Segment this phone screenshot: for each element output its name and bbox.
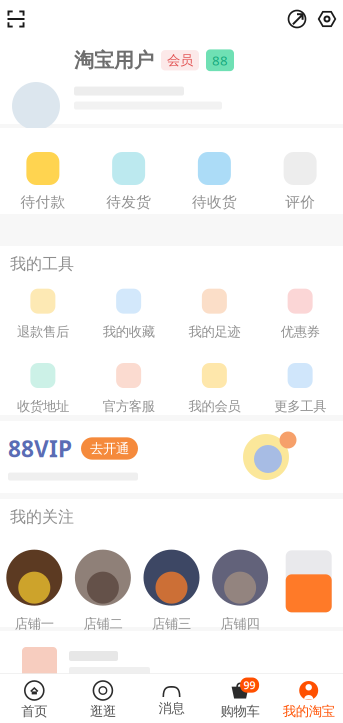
button[interactable]: 99 (206, 680, 274, 719)
button[interactable]: 逛逛 (69, 680, 137, 719)
button[interactable]: 店铺四 (206, 550, 274, 632)
staticText: 我的收藏 (103, 324, 155, 340)
staticText: 99 (244, 678, 256, 692)
staticText: 评价 (285, 193, 315, 211)
button[interactable]: 店铺二 (69, 550, 137, 632)
staticText: 消息 (158, 700, 184, 716)
button[interactable]: Share (282, 4, 312, 34)
staticText: 待发货 (106, 193, 151, 211)
staticText: 我的工具 (10, 254, 74, 274)
staticText: 逛逛 (90, 703, 116, 719)
staticText: 88VIP (8, 433, 72, 463)
staticText: 退款售后 (17, 324, 69, 340)
staticText: 店铺一 (15, 616, 54, 632)
button[interactable]: 更多工具 (257, 363, 343, 414)
button[interactable]: 官方客服 (86, 363, 172, 414)
button[interactable]: 淘宝用户 (0, 38, 343, 124)
staticText: 购物车 (221, 703, 260, 719)
staticText: 店铺四 (221, 616, 260, 632)
staticText: 首页 (21, 703, 47, 719)
button[interactable]: 消息 (137, 683, 206, 716)
staticText: 我的会员 (188, 398, 240, 414)
staticText: 去开通 (90, 440, 129, 457)
staticText: 官方客服 (103, 398, 155, 414)
button[interactable]: 收货地址 (0, 363, 86, 414)
staticText: 待收货 (192, 193, 237, 211)
button[interactable]: 88VIP (0, 421, 343, 493)
staticText: 我的淘宝 (283, 703, 335, 719)
button[interactable]: 退款售后 (0, 289, 86, 340)
staticText: 店铺二 (83, 616, 122, 632)
button[interactable] (0, 631, 343, 701)
staticText: 会员 (167, 52, 193, 68)
button[interactable]: 店铺一 (0, 550, 69, 632)
staticText: 我的关注 (10, 507, 74, 527)
staticText: 更多工具 (274, 398, 326, 414)
staticText: 收货地址 (17, 398, 69, 414)
staticText: 优惠券 (281, 324, 320, 340)
button[interactable]: 待收货 (171, 152, 257, 211)
button[interactable]: 待发货 (86, 152, 172, 211)
button[interactable]: Scan (1, 4, 31, 34)
button[interactable]: 评价 (257, 152, 343, 211)
staticText: 我的足迹 (188, 324, 240, 340)
staticText: 淘宝用户 (74, 48, 154, 73)
button[interactable]: 我的收藏 (86, 289, 172, 340)
button[interactable]: 店铺三 (137, 550, 206, 632)
button[interactable]: 我的淘宝 (274, 680, 343, 719)
button[interactable]: 首页 (0, 680, 69, 719)
staticText: 待付款 (20, 193, 65, 211)
button[interactable]: Settings (312, 4, 342, 34)
button[interactable]: 优惠券 (257, 289, 343, 340)
staticText: 88 (212, 51, 228, 69)
staticText: 店铺三 (152, 616, 191, 632)
button[interactable]: 待付款 (0, 152, 86, 211)
button[interactable]: 我的会员 (171, 363, 257, 414)
button[interactable]: Promotion (274, 554, 343, 627)
button[interactable]: 我的足迹 (171, 289, 257, 340)
